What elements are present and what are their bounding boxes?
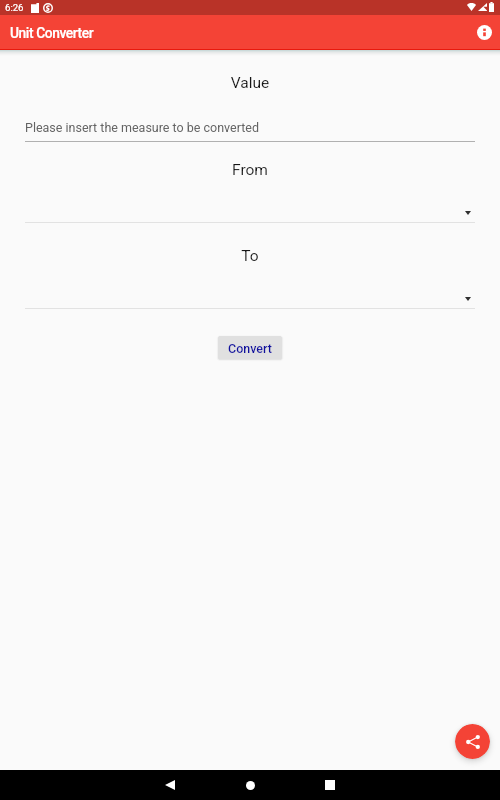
button[interactable] [25, 197, 475, 223]
button[interactable]: Info [477, 25, 492, 40]
staticText: Please insert the measure to be converte… [25, 120, 260, 135]
staticText: 6:26 [5, 2, 24, 13]
button[interactable]: Back [155, 770, 185, 800]
staticText: To [0, 247, 500, 265]
button[interactable]: Home [235, 770, 265, 800]
staticText: Value [0, 74, 500, 92]
staticText: From [0, 161, 500, 179]
button[interactable]: Recents [315, 770, 345, 800]
button[interactable]: Please insert the measure to be converte… [25, 114, 475, 142]
button[interactable]: Convert [218, 336, 282, 359]
button[interactable]: Share [455, 724, 490, 759]
staticText: Unit Converter [10, 25, 94, 41]
staticText: Convert [228, 341, 272, 356]
button[interactable] [25, 283, 475, 309]
